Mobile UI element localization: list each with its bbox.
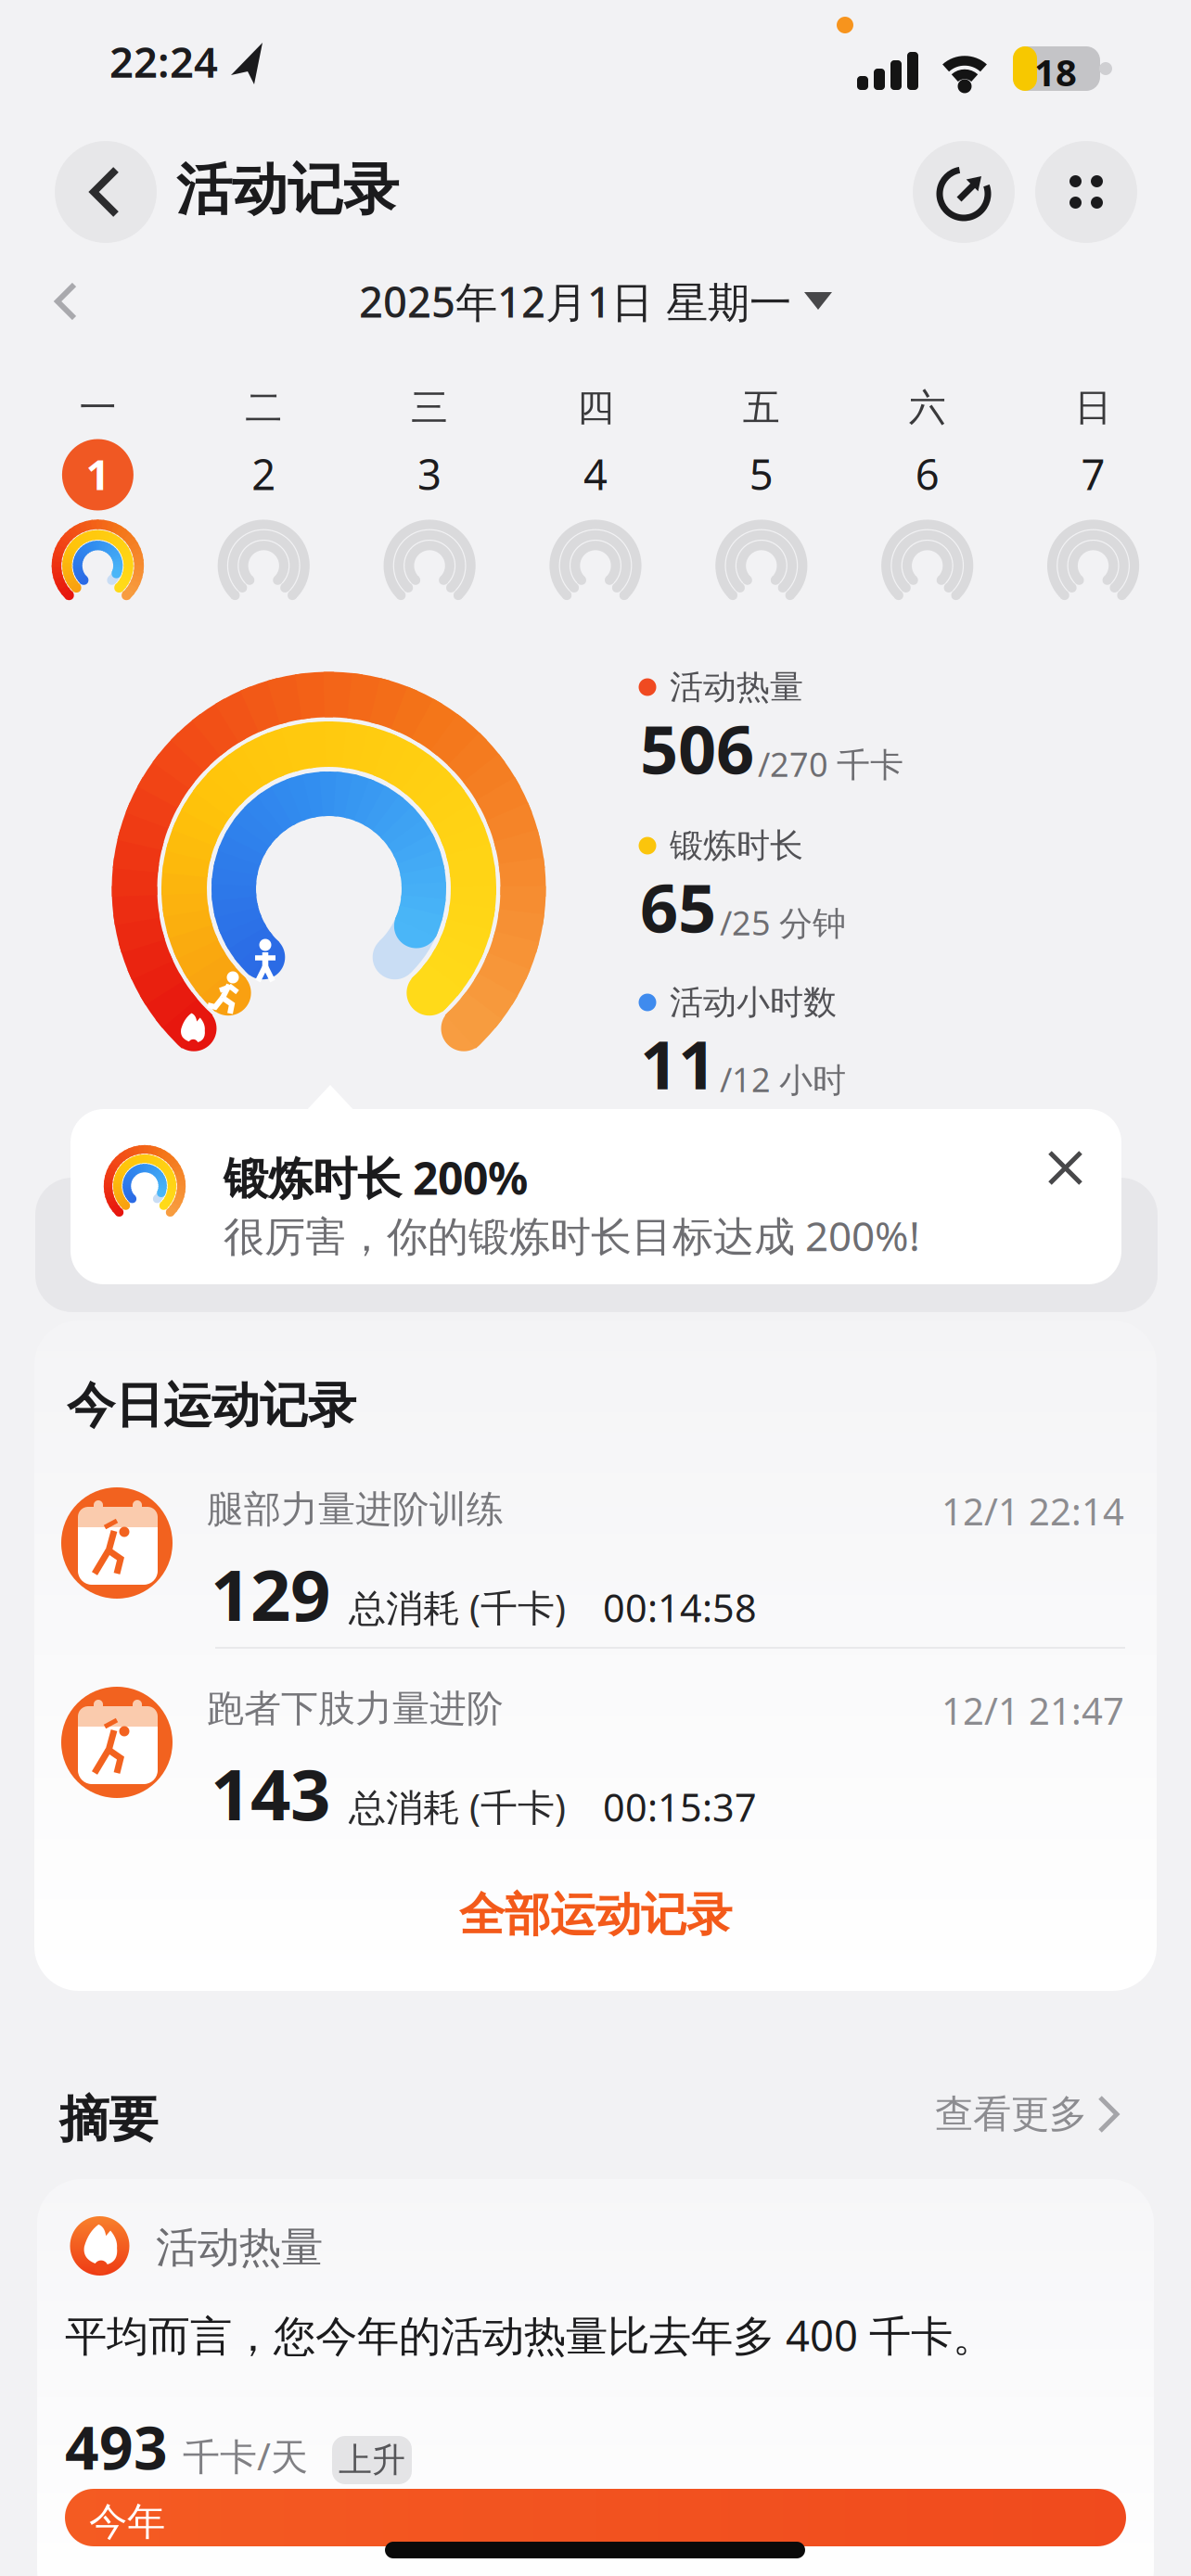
staticText: 506 (640, 704, 754, 792)
button[interactable]: 5 (706, 422, 817, 615)
button[interactable]: 全部运动记录 (401, 1882, 790, 1947)
staticText: 五 (743, 385, 780, 430)
staticText: 六 (909, 385, 946, 430)
staticText: 二 (245, 385, 282, 430)
button[interactable]: Back (55, 141, 157, 243)
button[interactable]: 7 (1038, 422, 1149, 615)
staticText: 锻炼时长 200% (224, 1148, 528, 1207)
staticText: /12 小时 (720, 1057, 846, 1101)
staticText: 5 (749, 446, 773, 502)
staticText: 3 (417, 446, 442, 502)
staticText: 活动热量 (156, 2222, 323, 2273)
staticText: 00:14:58 (603, 1582, 757, 1633)
staticText: 平均而言，您今年的活动热量比去年多 400 千卡。 (65, 2307, 994, 2363)
staticText: 活动热量 (670, 667, 803, 708)
button[interactable]: 1 (42, 422, 153, 615)
staticText: 7 (1081, 446, 1105, 502)
button[interactable]: 2 (208, 422, 319, 615)
staticText: 活动小时数 (670, 982, 837, 1023)
staticText: 今年 (89, 2498, 165, 2545)
staticText: 2025年12月1日 星期一 (359, 273, 791, 329)
staticText: 18 (1034, 47, 1077, 97)
staticText: 腿部力量进阶训练 (207, 1486, 504, 1532)
staticText: 活动记录 (176, 156, 399, 224)
staticText: 摘要 (59, 2089, 158, 2150)
staticText: 1 (86, 446, 110, 502)
staticText: 很厉害，你的锻炼时长目标达成 200%! (224, 1208, 920, 1262)
staticText: 总消耗 (千卡) (349, 1583, 566, 1632)
staticText: 总消耗 (千卡) (349, 1782, 566, 1831)
button[interactable]: More (1035, 141, 1137, 243)
button[interactable]: 跑者下肢力量进阶 (61, 1674, 1124, 1841)
button[interactable]: Previous day (46, 274, 87, 329)
staticText: 四 (577, 385, 614, 430)
button[interactable]: 活动热量 (37, 2179, 1154, 2576)
staticText: 一 (79, 385, 116, 430)
staticText: 全部运动记录 (459, 1887, 732, 1943)
staticText: 查看更多 (935, 2091, 1087, 2138)
staticText: 锻炼时长 (670, 825, 803, 866)
button[interactable]: 4 (540, 422, 651, 615)
staticText: 129 (211, 1547, 330, 1640)
button[interactable]: 6 (872, 422, 983, 615)
staticText: 千卡/天 (183, 2431, 308, 2480)
staticText: /270 千卡 (758, 742, 903, 786)
staticText: 今日运动记录 (67, 1376, 356, 1435)
button[interactable]: Share (913, 141, 1015, 243)
staticText: 4 (583, 446, 608, 502)
staticText: 143 (211, 1746, 330, 1840)
button[interactable]: 2025年12月1日 星期一 (271, 273, 920, 330)
staticText: /25 分钟 (720, 900, 846, 945)
button[interactable]: 3 (374, 422, 485, 615)
staticText: 12/1 21:47 (941, 1686, 1124, 1735)
staticText: 493 (65, 2407, 168, 2486)
button[interactable]: 腿部力量进阶训练 (61, 1474, 1124, 1641)
staticText: 三 (411, 385, 448, 430)
staticText: 11 (640, 1019, 716, 1108)
staticText: 65 (640, 862, 716, 951)
staticText: 上升 (339, 2440, 405, 2481)
button[interactable]: Close (1039, 1141, 1091, 1192)
staticText: 12/1 22:14 (941, 1486, 1124, 1536)
staticText: 2 (252, 446, 276, 502)
button[interactable]: 查看更多 (898, 2086, 1121, 2142)
staticText: 跑者下肢力量进阶 (207, 1686, 504, 1731)
staticText: 6 (915, 446, 939, 502)
staticText: 22:24 (109, 33, 218, 89)
staticText: 00:15:37 (603, 1781, 757, 1832)
staticText: 日 (1075, 385, 1112, 430)
